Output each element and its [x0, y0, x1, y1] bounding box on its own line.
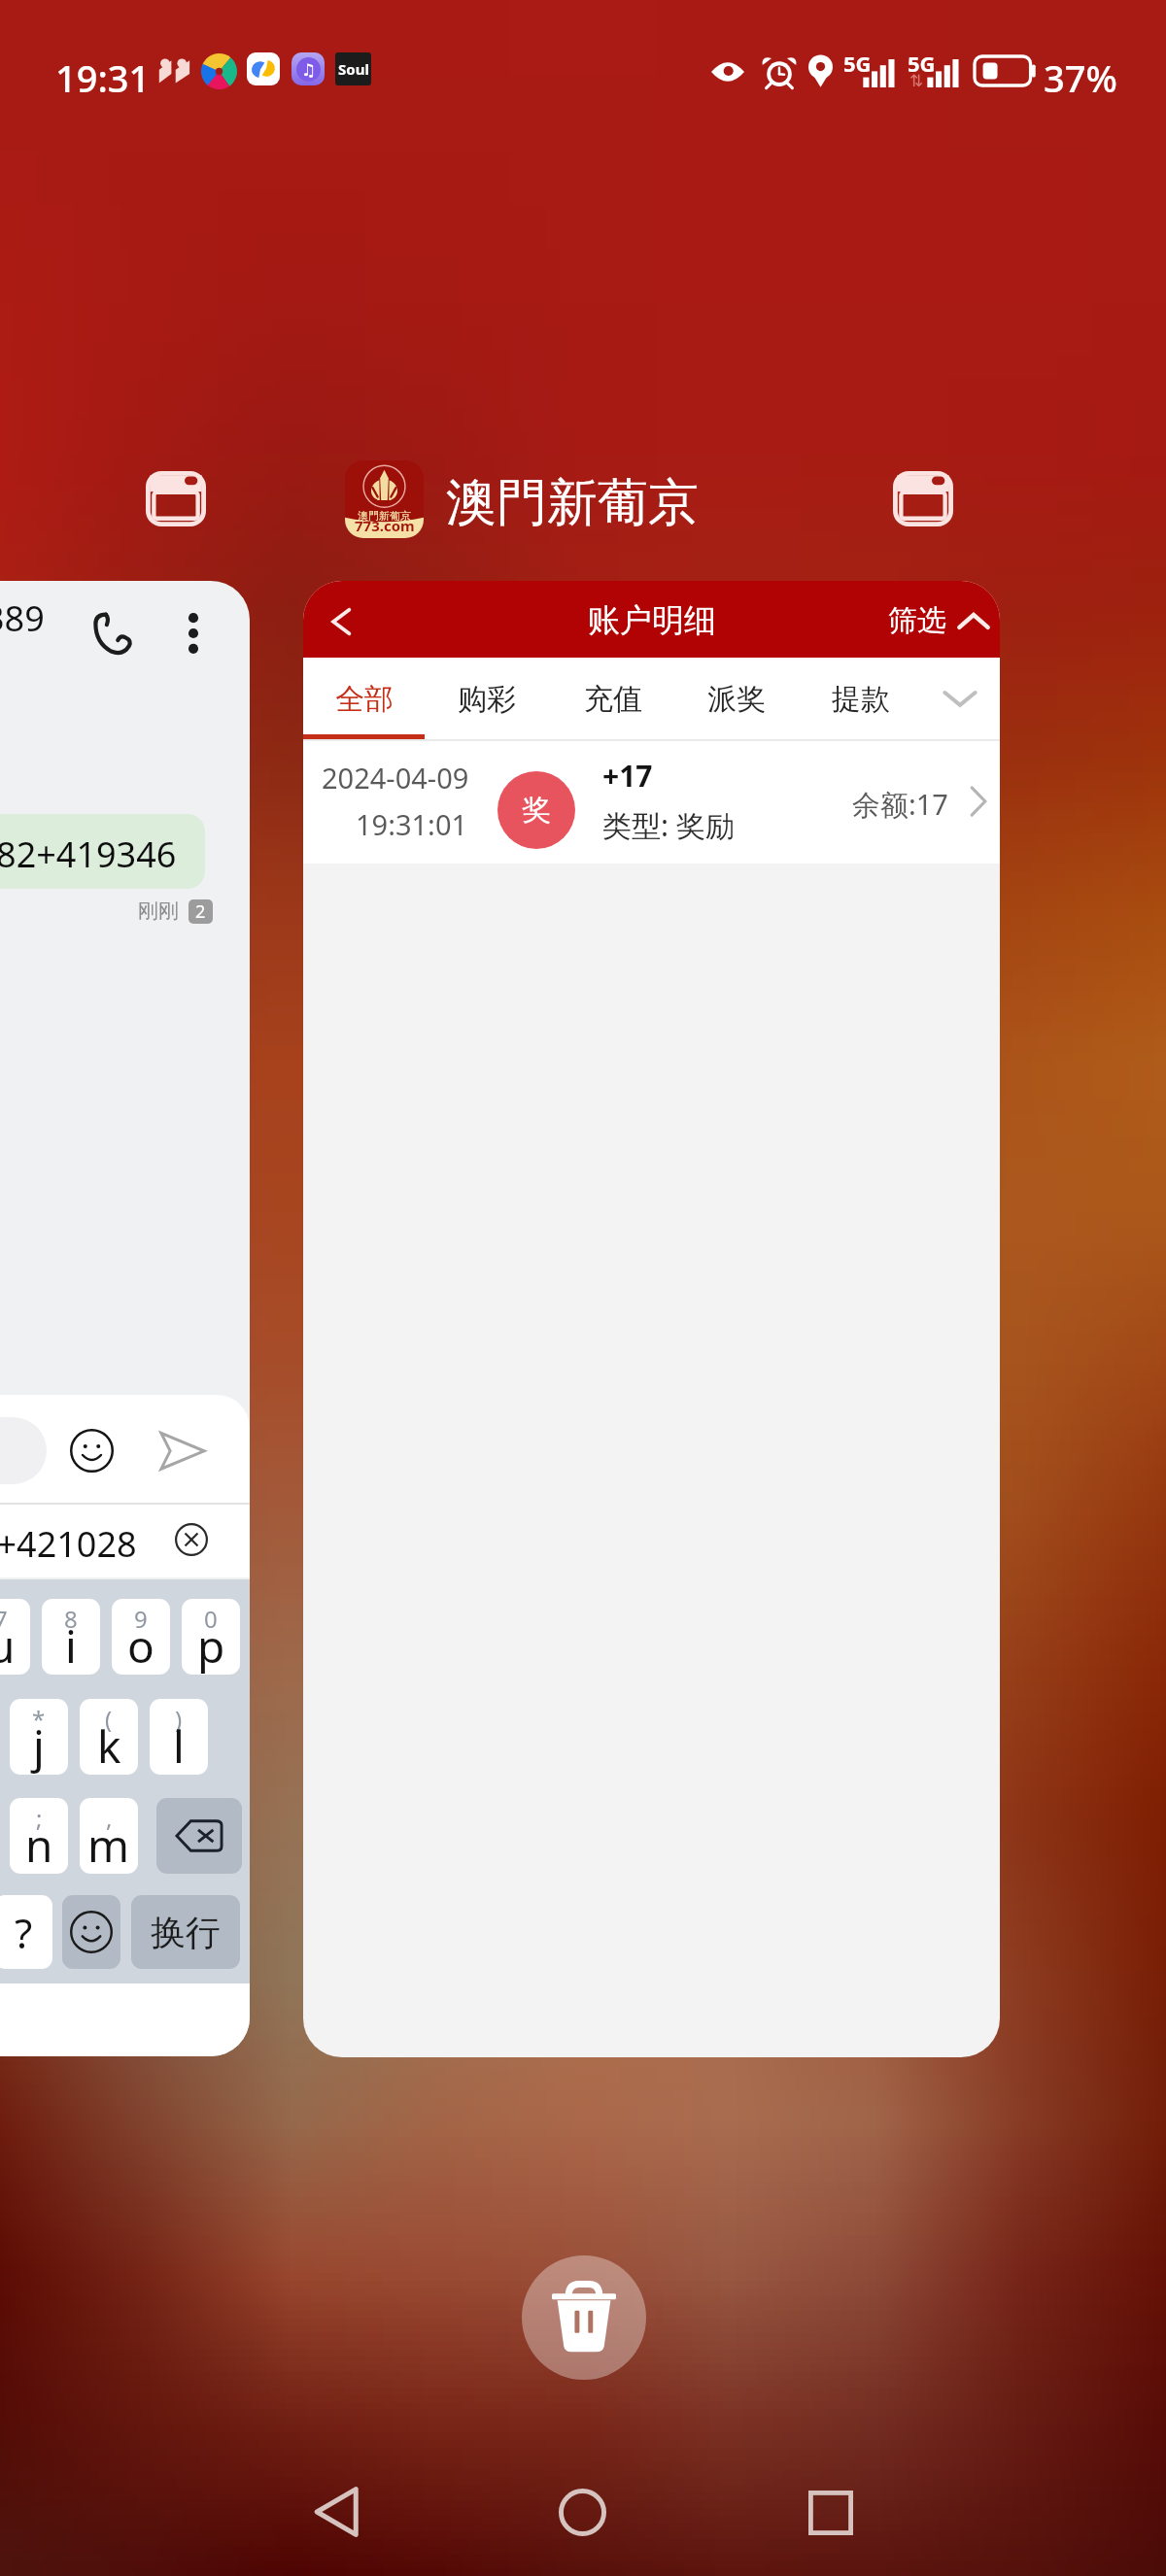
button[interactable]: 2024-04-09: [303, 741, 1000, 864]
staticText: 5G: [908, 49, 936, 78]
button[interactable]: Back: [303, 581, 1000, 2057]
button[interactable]: Back: [314, 594, 368, 649]
staticText: o: [127, 1615, 154, 1675]
staticText: u: [0, 1615, 16, 1675]
staticText: ♫: [301, 60, 317, 80]
button[interactable]: Clear: [167, 1515, 216, 1564]
button[interactable]: Recents: [776, 2464, 885, 2561]
button[interactable]: *: [10, 1699, 68, 1775]
staticText: 13917389: [0, 594, 45, 642]
staticText: l: [173, 1715, 185, 1775]
button[interactable]: ): [150, 1699, 208, 1775]
button[interactable]: 购彩: [432, 658, 541, 740]
staticText: …682+419346: [0, 830, 177, 878]
button[interactable]: 0: [182, 1599, 240, 1675]
button[interactable]: Send: [152, 1419, 214, 1481]
button[interactable]: Split screen left: [136, 461, 216, 535]
button[interactable]: Back: [282, 2463, 391, 2560]
staticText: (: [105, 1703, 113, 1735]
staticText: 刚刚: [138, 898, 179, 924]
button[interactable]: 提款: [806, 658, 915, 740]
staticText: ?: [15, 1905, 33, 1960]
staticText: …+421028: [0, 1520, 137, 1568]
button[interactable]: ,: [80, 1798, 138, 1874]
button[interactable]: Emoji keyboard: [62, 1895, 120, 1969]
button[interactable]: 8: [42, 1599, 100, 1675]
staticText: 购彩: [458, 681, 516, 718]
staticText: m: [87, 1814, 130, 1874]
staticText: 澳門新葡京: [358, 509, 411, 523]
staticText: i: [65, 1615, 77, 1675]
button[interactable]: Backspace: [156, 1798, 242, 1874]
button[interactable]: 13917389: [0, 581, 250, 2056]
button[interactable]: Home: [528, 2463, 636, 2560]
button[interactable]: More options: [166, 606, 221, 661]
staticText: Soul: [338, 59, 369, 79]
staticText: 全部: [335, 681, 394, 718]
staticText: ,: [106, 1802, 113, 1834]
staticText: 5G: [843, 49, 872, 78]
staticText: 提款: [832, 681, 890, 718]
button[interactable]: 9: [112, 1599, 170, 1675]
staticText: 奖: [522, 792, 551, 829]
staticText: 澳門新葡京: [446, 471, 699, 535]
staticText: +17: [602, 756, 653, 796]
staticText: 37%: [1044, 52, 1117, 103]
button[interactable]: 充值: [559, 658, 668, 740]
button[interactable]: 换行: [131, 1895, 240, 1969]
button[interactable]: Clear all: [522, 2255, 646, 2380]
button[interactable]: Split screen right: [883, 461, 963, 535]
button[interactable]: Call: [86, 606, 140, 661]
staticText: n: [25, 1814, 53, 1874]
staticText: 换行: [151, 1911, 221, 1954]
button[interactable]: Emoji: [59, 1418, 123, 1482]
button[interactable]: 派奖: [682, 658, 791, 740]
staticText: 19:31:01: [356, 805, 468, 843]
staticText: 类型: 奖励: [602, 805, 735, 845]
staticText: ;: [36, 1802, 43, 1834]
staticText: ⇅: [909, 71, 924, 90]
staticText: p: [197, 1615, 225, 1675]
button[interactable]: Expand tabs: [933, 677, 987, 720]
button[interactable]: 筛选: [884, 602, 993, 639]
staticText: 2: [195, 899, 206, 924]
staticText: 8: [64, 1603, 78, 1635]
staticText: 19:31: [55, 52, 151, 103]
staticText: 2024-04-09: [322, 759, 469, 797]
staticText: 余额:17: [852, 785, 948, 824]
staticText: k: [97, 1715, 121, 1775]
button[interactable]: 全部: [310, 658, 419, 740]
staticText: 派奖: [707, 681, 766, 718]
staticText: 773.com: [355, 516, 415, 535]
staticText: ): [175, 1703, 183, 1735]
button[interactable]: ?: [0, 1895, 52, 1969]
staticText: 0: [204, 1603, 218, 1635]
staticText: 充值: [584, 681, 642, 718]
button[interactable]: (: [80, 1699, 138, 1775]
staticText: 9: [134, 1603, 148, 1635]
staticText: j: [33, 1715, 45, 1775]
button[interactable]: Details: [962, 785, 995, 818]
staticText: 账户明细: [588, 600, 716, 641]
button[interactable]: 7: [0, 1599, 30, 1675]
staticText: 7: [0, 1603, 8, 1635]
staticText: *: [32, 1703, 46, 1735]
staticText: 筛选: [888, 602, 946, 639]
button[interactable]: ;: [10, 1798, 68, 1874]
